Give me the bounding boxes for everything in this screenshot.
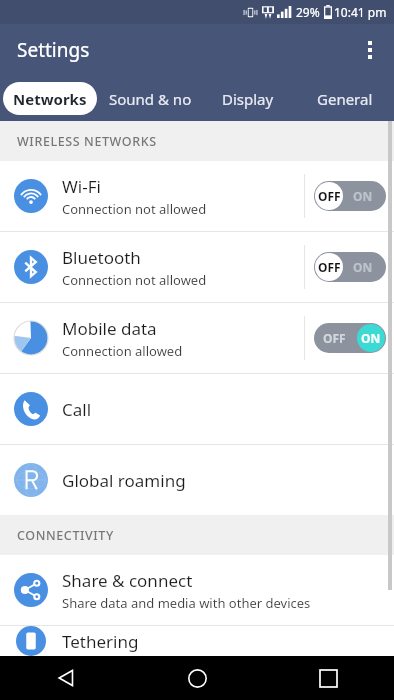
staticText: Networks bbox=[13, 89, 87, 109]
button[interactable]: Toggle Wi-Fi bbox=[305, 161, 394, 231]
staticText: Share & connect bbox=[62, 569, 193, 592]
staticText: Settings bbox=[17, 37, 90, 63]
staticText: Connection not allowed bbox=[62, 200, 207, 218]
staticText: General bbox=[317, 89, 373, 109]
button[interactable]: Global roaming bbox=[0, 445, 394, 515]
staticText: Connection allowed bbox=[62, 342, 183, 360]
staticText: Call bbox=[62, 398, 92, 421]
button[interactable]: Wi-Fi bbox=[0, 161, 394, 231]
staticText: Mobile data bbox=[62, 317, 157, 340]
staticText: WIRELESS NETWORKS bbox=[17, 133, 157, 150]
button[interactable]: Toggle Mobile data bbox=[305, 303, 394, 373]
staticText: CONNECTIVITY bbox=[17, 527, 114, 544]
staticText: Tethering bbox=[62, 630, 139, 653]
button[interactable]: Call bbox=[0, 374, 394, 444]
staticText: Connection not allowed bbox=[62, 271, 207, 289]
staticText: Share data and media with other devices bbox=[62, 594, 311, 612]
button[interactable]: Sound & no bbox=[100, 76, 200, 121]
staticText: Display bbox=[222, 89, 274, 109]
staticText: ON bbox=[353, 188, 373, 204]
button[interactable]: Back bbox=[0, 656, 132, 700]
staticText: 10:41 pm bbox=[334, 4, 387, 20]
button[interactable]: Display bbox=[200, 76, 295, 121]
staticText: Sound & no bbox=[109, 89, 192, 109]
staticText: 29% bbox=[296, 4, 320, 20]
button[interactable]: Mobile data bbox=[0, 303, 394, 373]
staticText: Bluetooth bbox=[62, 246, 141, 269]
staticText: Global roaming bbox=[62, 469, 186, 492]
button[interactable]: Share & connect bbox=[0, 555, 394, 625]
button[interactable]: Tethering bbox=[0, 626, 394, 656]
button[interactable]: Toggle Bluetooth bbox=[305, 232, 394, 302]
staticText: OFF bbox=[318, 259, 341, 275]
staticText: ON bbox=[361, 330, 381, 346]
staticText: ON bbox=[353, 259, 373, 275]
button[interactable]: Networks bbox=[0, 76, 100, 121]
button[interactable]: More options bbox=[346, 26, 394, 74]
staticText: Wi-Fi bbox=[62, 175, 101, 198]
staticText: OFF bbox=[318, 188, 341, 204]
button[interactable]: Bluetooth bbox=[0, 232, 394, 302]
button[interactable]: Home bbox=[132, 656, 263, 700]
button[interactable]: General bbox=[295, 76, 394, 121]
button[interactable]: Recents bbox=[263, 656, 394, 700]
staticText: OFF bbox=[323, 330, 346, 346]
